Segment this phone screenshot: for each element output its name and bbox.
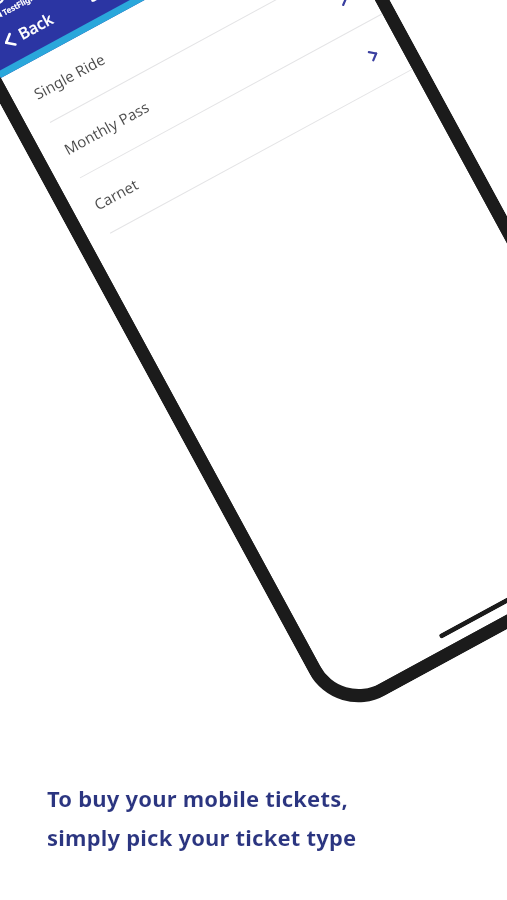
- staticText: TestFlight: [0, 0, 40, 17]
- button[interactable]: Monthly Pass: [31, 0, 383, 189]
- button[interactable]: Single Ride: [1, 0, 352, 133]
- button[interactable]: Carnet: [61, 14, 413, 244]
- staticText: Single Ride: [30, 49, 108, 104]
- staticText: To buy your mobile tickets,: [47, 783, 348, 813]
- other: Open Monthly Pass: [336, 0, 351, 7]
- button[interactable]: Back: [0, 0, 65, 62]
- staticText: Carnet: [90, 174, 142, 214]
- staticText: Select Ticket Type: [84, 0, 211, 6]
- staticText: Monthly Pass: [60, 96, 152, 159]
- staticText: Back: [14, 8, 57, 45]
- staticText: 9:13: [0, 0, 27, 8]
- other: Open Carnet: [366, 47, 381, 62]
- staticText: simply pick your ticket type: [47, 822, 357, 852]
